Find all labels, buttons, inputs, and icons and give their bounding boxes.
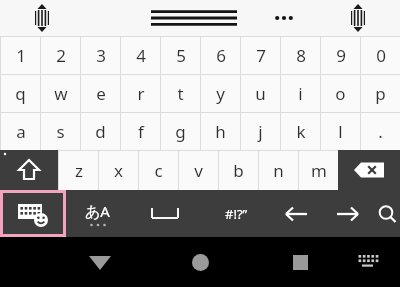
staticText: b bbox=[233, 159, 244, 182]
button[interactable]: . bbox=[361, 113, 400, 150]
staticText: n bbox=[273, 159, 284, 182]
button[interactable]: m bbox=[299, 151, 338, 190]
button[interactable]: Search bbox=[374, 190, 400, 237]
button[interactable]: Resize keyboard right bbox=[347, 1, 369, 35]
button[interactable]: t bbox=[161, 75, 200, 112]
staticText: 4 bbox=[136, 44, 146, 67]
button[interactable]: z bbox=[59, 151, 98, 190]
button[interactable]: c bbox=[139, 151, 178, 190]
button[interactable]: b bbox=[219, 151, 258, 190]
button[interactable]: r bbox=[121, 75, 160, 112]
button[interactable]: Recent apps bbox=[270, 238, 330, 286]
button[interactable]: 7 bbox=[241, 37, 280, 74]
button[interactable]: Resize keyboard left bbox=[31, 1, 53, 35]
button[interactable]: w bbox=[41, 75, 80, 112]
staticText: f bbox=[138, 120, 144, 143]
staticText: #!?” bbox=[225, 205, 248, 223]
staticText: z bbox=[75, 159, 83, 182]
button[interactable]: h bbox=[201, 113, 240, 150]
button[interactable]: Back bbox=[70, 238, 130, 286]
button[interactable]: u bbox=[241, 75, 280, 112]
staticText: l bbox=[338, 120, 343, 143]
button[interactable]: Switch language bbox=[66, 190, 128, 237]
staticText: 3 bbox=[96, 44, 106, 67]
staticText: o bbox=[335, 82, 346, 105]
button[interactable]: k bbox=[281, 113, 320, 150]
button[interactable]: 4 bbox=[121, 37, 160, 74]
staticText: x bbox=[114, 159, 123, 182]
button[interactable]: 2 bbox=[41, 37, 80, 74]
staticText: y bbox=[216, 82, 225, 105]
button[interactable]: v bbox=[179, 151, 218, 190]
staticText: h bbox=[215, 120, 226, 143]
button[interactable]: 6 bbox=[201, 37, 240, 74]
staticText: v bbox=[194, 159, 203, 182]
staticText: j bbox=[258, 120, 263, 143]
button[interactable]: d bbox=[81, 113, 120, 150]
button[interactable]: Move cursor left bbox=[270, 190, 322, 237]
staticText: 0 bbox=[376, 44, 386, 67]
button[interactable]: y bbox=[201, 75, 240, 112]
staticText: 8 bbox=[296, 44, 306, 67]
button[interactable]: Shift bbox=[0, 150, 58, 190]
button[interactable]: q bbox=[1, 75, 40, 112]
button[interactable]: g bbox=[161, 113, 200, 150]
button[interactable]: #!?” bbox=[202, 190, 270, 237]
button[interactable]: i bbox=[281, 75, 320, 112]
button[interactable]: Move cursor right bbox=[322, 190, 374, 237]
staticText: 1 bbox=[16, 44, 26, 67]
staticText: c bbox=[154, 159, 163, 182]
button[interactable]: Backspace bbox=[338, 150, 400, 190]
staticText: m bbox=[311, 159, 327, 182]
button[interactable]: Move keyboard bbox=[148, 5, 240, 31]
button[interactable]: 5 bbox=[161, 37, 200, 74]
button[interactable]: o bbox=[321, 75, 360, 112]
staticText: w bbox=[54, 82, 68, 105]
staticText: 6 bbox=[216, 44, 226, 67]
staticText: p bbox=[375, 82, 386, 105]
button[interactable]: Keyboard active bbox=[346, 238, 390, 286]
staticText: a bbox=[16, 120, 26, 143]
staticText: 9 bbox=[336, 44, 346, 67]
button[interactable]: 1 bbox=[1, 37, 40, 74]
staticText: k bbox=[296, 120, 306, 143]
staticText: e bbox=[96, 82, 106, 105]
button[interactable]: a bbox=[1, 113, 40, 150]
button[interactable]: s bbox=[41, 113, 80, 150]
button[interactable]: Home bbox=[170, 238, 230, 286]
staticText: g bbox=[175, 120, 186, 143]
button[interactable]: 9 bbox=[321, 37, 360, 74]
staticText: r bbox=[137, 82, 145, 105]
staticText: 5 bbox=[176, 44, 186, 67]
staticText: u bbox=[255, 82, 266, 105]
button[interactable]: 3 bbox=[81, 37, 120, 74]
staticText: あA bbox=[85, 201, 110, 221]
button[interactable]: f bbox=[121, 113, 160, 150]
button[interactable]: j bbox=[241, 113, 280, 150]
button[interactable]: Space bbox=[128, 190, 202, 237]
button[interactable]: p bbox=[361, 75, 400, 112]
staticText: d bbox=[95, 120, 106, 143]
button[interactable]: 8 bbox=[281, 37, 320, 74]
staticText: i bbox=[298, 82, 303, 105]
button[interactable]: x bbox=[99, 151, 138, 190]
staticText: 7 bbox=[256, 44, 266, 67]
button[interactable]: n bbox=[259, 151, 298, 190]
staticText: t bbox=[177, 82, 184, 105]
button[interactable]: Emoji keyboard bbox=[3, 193, 63, 234]
button[interactable]: 0 bbox=[361, 37, 400, 74]
button[interactable]: More options bbox=[268, 6, 300, 30]
staticText: q bbox=[15, 82, 26, 105]
staticText: s bbox=[56, 120, 65, 143]
button[interactable]: l bbox=[321, 113, 360, 150]
staticText: 2 bbox=[56, 44, 66, 67]
button[interactable]: e bbox=[81, 75, 120, 112]
staticText: . bbox=[378, 120, 383, 143]
